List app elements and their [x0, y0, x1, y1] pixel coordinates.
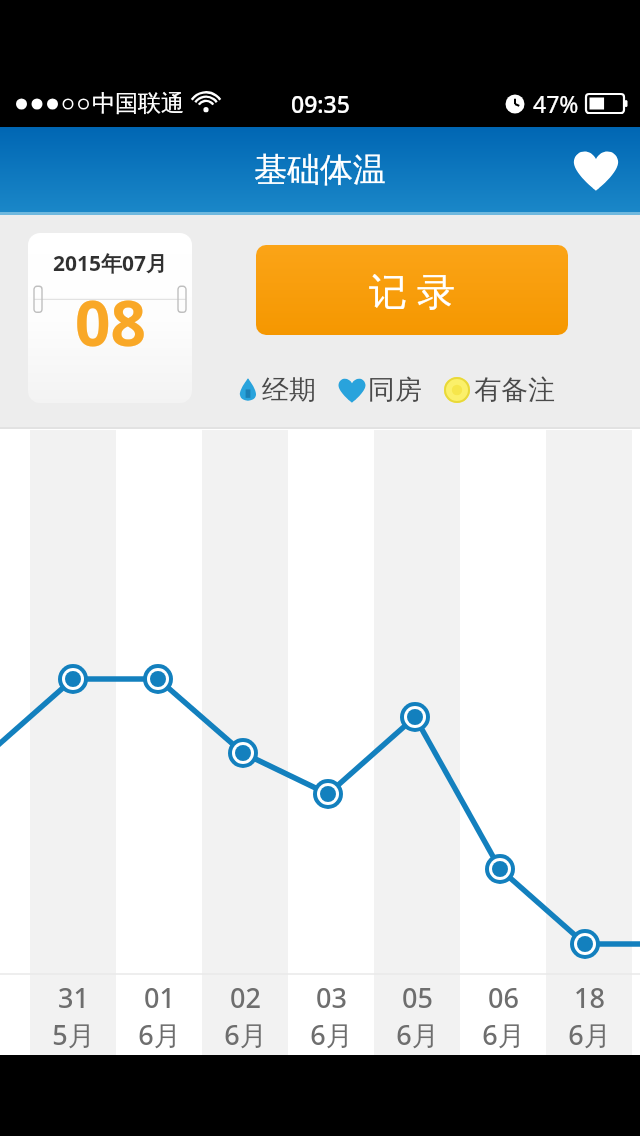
staticText: 6月: [224, 1016, 267, 1053]
staticText: 09:35: [291, 88, 350, 119]
staticText: 05: [402, 979, 433, 1016]
staticText: 02: [230, 979, 261, 1016]
staticText: 经期: [262, 373, 316, 407]
staticText: 03: [316, 979, 347, 1016]
staticText: 中国联通: [92, 89, 184, 118]
staticText: 47%: [533, 88, 579, 119]
staticText: 基础体温: [254, 149, 386, 191]
button[interactable]: 记 录: [256, 245, 568, 335]
staticText: 6月: [482, 1016, 525, 1053]
staticText: 6月: [138, 1016, 181, 1053]
staticText: 6月: [568, 1016, 611, 1053]
button[interactable]: Favorite: [566, 140, 626, 200]
button[interactable]: 2015年07月: [28, 233, 192, 403]
staticText: 01: [144, 979, 175, 1016]
staticText: 同房: [368, 373, 422, 407]
staticText: 5月: [52, 1016, 95, 1053]
staticText: 08: [75, 280, 146, 364]
staticText: 31: [58, 979, 89, 1016]
staticText: 2015年07月: [53, 249, 168, 278]
staticText: 6月: [396, 1016, 439, 1053]
staticText: 18: [574, 979, 605, 1016]
staticText: 有备注: [474, 373, 555, 407]
staticText: 6月: [310, 1016, 353, 1053]
staticText: 06: [488, 979, 519, 1016]
staticText: 记 录: [369, 264, 455, 316]
